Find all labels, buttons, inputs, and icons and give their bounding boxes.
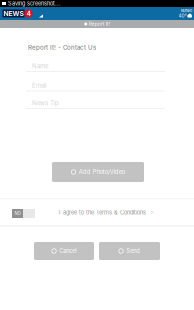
staticText: Report It! <box>89 21 110 27</box>
staticText: Email <box>32 82 46 89</box>
staticText: I agree to the Terms & Conditions <box>59 209 146 216</box>
staticText: Saving screenshot... <box>8 0 61 7</box>
button[interactable]: Send <box>99 242 160 260</box>
staticText: Cancel <box>59 247 76 254</box>
staticText: 40° <box>178 13 186 19</box>
staticText: Buffalo <box>181 8 192 13</box>
staticText: NEWS <box>3 9 23 18</box>
staticText: Add Photo/Video <box>79 168 125 175</box>
button[interactable]: NO <box>0 199 194 225</box>
staticText: 4 <box>27 10 31 17</box>
button[interactable]: Cancel <box>34 242 94 260</box>
staticText: News Tip <box>32 99 59 107</box>
staticText: Send <box>126 247 140 254</box>
button[interactable]: Add Photo/Video <box>52 162 144 182</box>
staticText: > <box>150 209 154 216</box>
staticText: Name <box>32 62 49 70</box>
staticText: NO <box>14 211 20 216</box>
staticText: Report It! - Contact Us <box>28 44 96 51</box>
